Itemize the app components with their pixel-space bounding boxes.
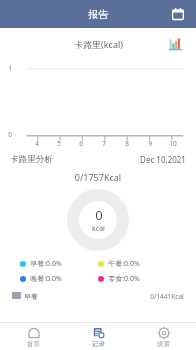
staticText: 卡路里分析 [10, 154, 53, 165]
staticText: 10 [169, 139, 177, 148]
staticText: 卡路里(kcal) [74, 38, 123, 50]
staticText: Dec 10,2021 [140, 154, 186, 165]
button[interactable]: 记录 [66, 323, 131, 350]
staticText: 设置 [157, 340, 170, 348]
staticText: 4 [35, 139, 39, 148]
staticText: 零食:0.0% [108, 274, 140, 284]
button[interactable]: 设置 [131, 323, 196, 350]
button[interactable]: 零食:0.0% [98, 274, 176, 284]
button[interactable]: 晚餐:0.0% [20, 274, 98, 284]
staticText: 9 [148, 139, 152, 148]
staticText: 0 [8, 130, 12, 139]
staticText: 6 [79, 139, 83, 148]
staticText: 报告 [88, 8, 108, 21]
staticText: kcal [92, 224, 105, 234]
staticText: 5 [57, 139, 61, 148]
staticText: 记录 [92, 340, 105, 348]
staticText: 8 [125, 139, 129, 148]
staticText: 早餐 [24, 292, 38, 301]
staticText: 0 [95, 206, 103, 224]
staticText: 1 [8, 64, 12, 73]
staticText: 午餐:0.0% [108, 259, 140, 269]
button[interactable]: 首页 [0, 323, 66, 350]
button[interactable]: Chart type [166, 35, 184, 53]
button[interactable]: Calendar [168, 4, 188, 24]
staticText: 晚餐:0.0% [30, 274, 62, 284]
staticText: 0/1441Kcal [150, 292, 184, 301]
staticText: 0/1757Kcal [0, 171, 196, 183]
button[interactable]: 早餐:0.0% [20, 259, 98, 269]
button[interactable]: 午餐:0.0% [98, 259, 176, 269]
staticText: 首页 [27, 340, 40, 348]
staticText: 7 [102, 139, 106, 148]
staticText: 早餐:0.0% [30, 259, 62, 269]
